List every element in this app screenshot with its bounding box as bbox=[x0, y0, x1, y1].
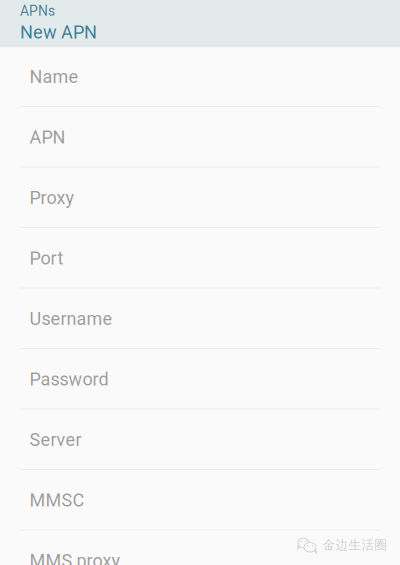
button[interactable]: MMSC bbox=[0, 470, 400, 530]
button[interactable]: MMS proxy bbox=[0, 530, 400, 565]
staticText: APNs bbox=[20, 3, 55, 19]
staticText: Password bbox=[29, 369, 108, 390]
staticText: Name bbox=[29, 66, 78, 87]
button[interactable]: Username bbox=[0, 288, 400, 349]
staticText: New APN bbox=[20, 22, 97, 43]
staticText: MMS proxy bbox=[29, 550, 120, 565]
button[interactable]: Port bbox=[0, 228, 400, 288]
staticText: Username bbox=[29, 308, 112, 329]
button[interactable]: APN bbox=[0, 107, 400, 167]
staticText: Port bbox=[29, 248, 63, 269]
button[interactable]: Password bbox=[0, 349, 400, 409]
button[interactable]: Server bbox=[0, 409, 400, 470]
button[interactable]: Proxy bbox=[0, 167, 400, 228]
button[interactable]: Name bbox=[0, 46, 400, 107]
staticText: APN bbox=[29, 127, 65, 148]
staticText: 金边生活圈 bbox=[322, 537, 387, 553]
staticText: Proxy bbox=[29, 187, 74, 208]
staticText: Server bbox=[29, 429, 81, 450]
staticText: MMSC bbox=[29, 490, 84, 511]
